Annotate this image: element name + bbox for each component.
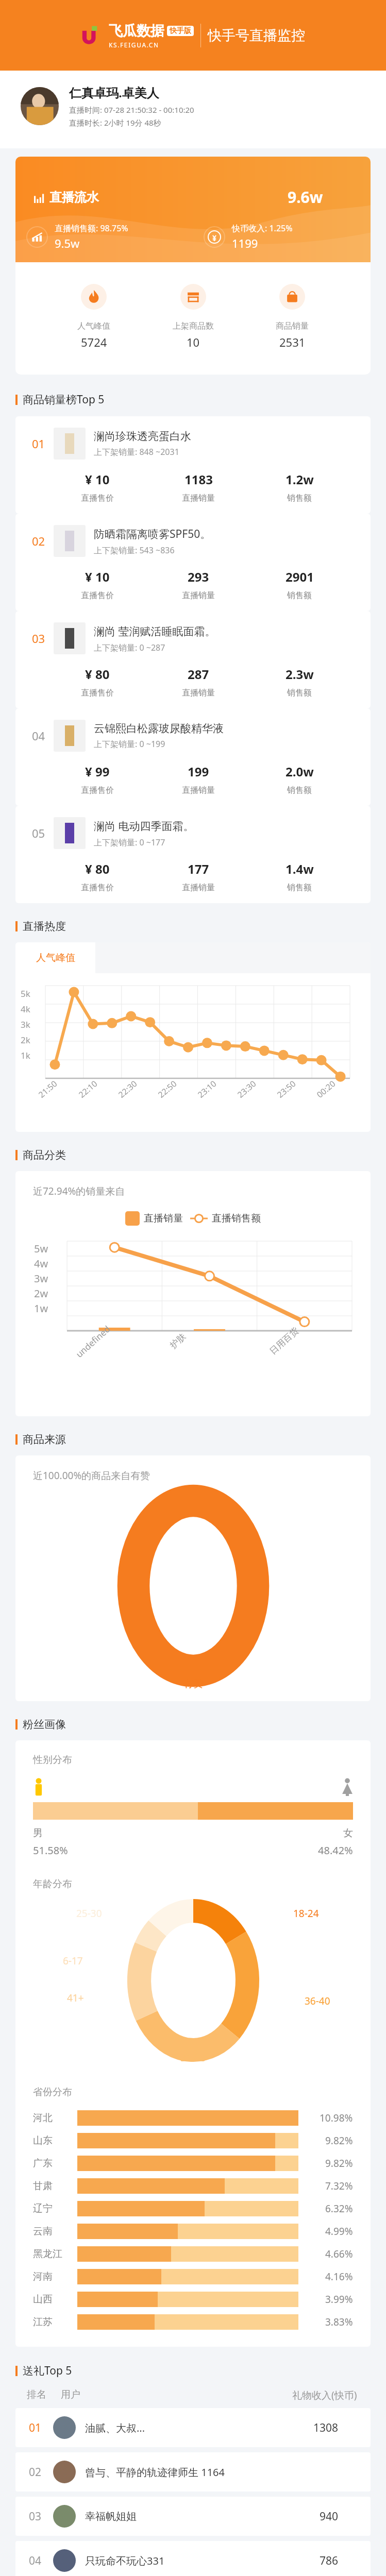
staticText: 786 [320,2553,339,2568]
staticText: 直播热度 [23,920,66,933]
staticText: 黑龙江 [33,2248,62,2260]
staticText: 23:30 [235,1078,258,1100]
staticText: 1183 [184,471,213,488]
staticText: 23:10 [195,1078,219,1100]
staticText: 51.58% [33,1843,68,1857]
staticText: ¥ 99 [85,763,110,780]
staticText: 3.83% [325,2315,353,2329]
button[interactable]: 人气峰值 [15,942,95,973]
staticText: 9.5w [55,235,80,251]
staticText: 4k [21,1003,30,1015]
staticText: 性别分布 [33,1754,72,1766]
staticText: 03 [32,631,45,646]
button[interactable]: 04 [15,2541,371,2576]
staticText: ¥ 10 [85,471,110,488]
staticText: 4w [34,1257,48,1270]
staticText: 10 [187,334,200,350]
staticText: 商品分类 [23,1148,66,1162]
staticText: 人气峰值 [77,321,110,331]
staticText: 河北 [33,2112,53,2124]
staticText: 直播售价 [81,688,114,698]
staticText: 25-30 [76,1907,102,1920]
staticText: 销售额 [287,688,312,698]
staticText: 直播时长: 2小时 19分 48秒 [69,117,161,128]
staticText: 3k [21,1019,30,1030]
staticText: 2531 [279,334,306,350]
staticText: 甘肃 [33,2180,53,2192]
staticText: 山东 [33,2134,53,2147]
staticText: KS.FEIGUA.CN [109,41,159,49]
staticText: 直播销量 [182,883,215,893]
staticText: 5w [34,1242,48,1256]
staticText: 销售额 [287,785,312,795]
staticText: 直播时间: 07-28 21:50:32 - 00:10:20 [69,105,194,115]
staticText: 05 [32,825,45,841]
staticText: 上下架销量: 848 ~2031 [94,446,179,457]
button[interactable]: 03 [15,2497,371,2536]
button[interactable]: 05 [15,806,371,903]
staticText: 4.16% [325,2270,353,2283]
staticText: 澜尚 莹润赋活睡眠面霜。 [94,624,216,639]
staticText: 4.99% [325,2225,353,2238]
staticText: 1.4w [286,860,314,877]
button[interactable]: 02 [15,514,371,611]
staticText: 5k [21,988,30,999]
button[interactable]: 02 [15,2452,371,2492]
staticText: 女 [343,1827,353,1839]
staticText: 2.0w [286,763,314,780]
staticText: 商品销量 [276,321,309,331]
staticText: 曾与、平静的轨迹律师生 1164 [85,2465,225,2479]
staticText: 男 [33,1827,43,1839]
staticText: 省份分布 [33,2086,72,2098]
staticText: 山西 [33,2293,53,2306]
button[interactable]: 01 [15,2408,371,2447]
staticText: ¥ 10 [85,568,110,585]
staticText: 辽宁 [33,2202,53,2215]
staticText: 直播销量 [182,785,215,795]
staticText: 48.42% [318,1843,353,1857]
staticText: 只玩命不玩心331 [85,2554,165,2568]
staticText: 9.82% [325,2134,353,2147]
staticText: undefined [73,1323,113,1360]
staticText: ¥ 80 [85,860,110,877]
staticText: 澜尚 电动四季面霜。 [94,819,194,834]
staticText: 江苏 [33,2316,53,2328]
staticText: 04 [32,728,45,743]
staticText: 22:50 [155,1078,179,1100]
staticText: 1w [34,1301,48,1315]
staticText: 直播销量 [144,1212,183,1225]
staticText: 幸福帆姐姐 [85,2510,137,2523]
button[interactable]: 03 [15,611,371,708]
staticText: 有赞 [183,1677,204,1690]
staticText: 1k [21,1049,30,1061]
staticText: 销售额 [287,590,312,601]
staticText: 3.99% [325,2293,353,2306]
staticText: 10.98% [320,2111,353,2125]
staticText: 上下架销量: 0 ~199 [94,738,165,750]
staticText: 直播销量 [182,590,215,601]
staticText: 上架商品数 [173,321,214,331]
staticText: 直播销售额: 98.75% [55,223,128,234]
staticText: 上下架销量: 543 ~836 [94,545,175,556]
staticText: 01 [32,436,45,451]
staticText: 直播销量 [182,688,215,698]
staticText: 澜尚珍珠透亮蛋白水 [94,430,191,443]
staticText: 199 [188,763,209,780]
staticText: 31-35 [180,2051,206,2064]
staticText: 直播售价 [81,493,114,503]
staticText: 940 [320,2509,339,2524]
staticText: 1199 [232,235,258,251]
staticText: 护肤 [168,1331,188,1351]
staticText: 广东 [33,2157,53,2170]
staticText: 商品来源 [23,1433,66,1446]
button[interactable]: 04 [15,708,371,806]
staticText: 直播售价 [81,590,114,601]
staticText: ¥ 80 [85,666,110,683]
staticText: 日用百货 [268,1325,301,1357]
button[interactable]: 01 [15,416,371,514]
staticText: 飞瓜数据 [109,22,164,40]
staticText: 商品销量榜Top 5 [23,392,105,407]
staticText: 销售额 [287,883,312,893]
staticText: 油腻、大叔... [85,2421,145,2435]
staticText: 9.6w [288,187,323,208]
